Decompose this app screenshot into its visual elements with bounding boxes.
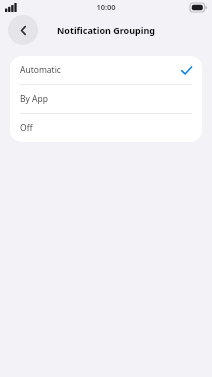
staticText: Notification Grouping <box>57 24 155 36</box>
button[interactable]: Back <box>8 15 38 45</box>
staticText: 10:00 <box>96 2 116 12</box>
button[interactable]: Off <box>10 114 202 142</box>
staticText: Automatic <box>20 64 61 76</box>
button[interactable]: By App <box>10 85 202 113</box>
button[interactable]: Automatic <box>10 56 202 84</box>
staticText: Off <box>20 122 33 134</box>
staticText: By App <box>20 93 48 105</box>
